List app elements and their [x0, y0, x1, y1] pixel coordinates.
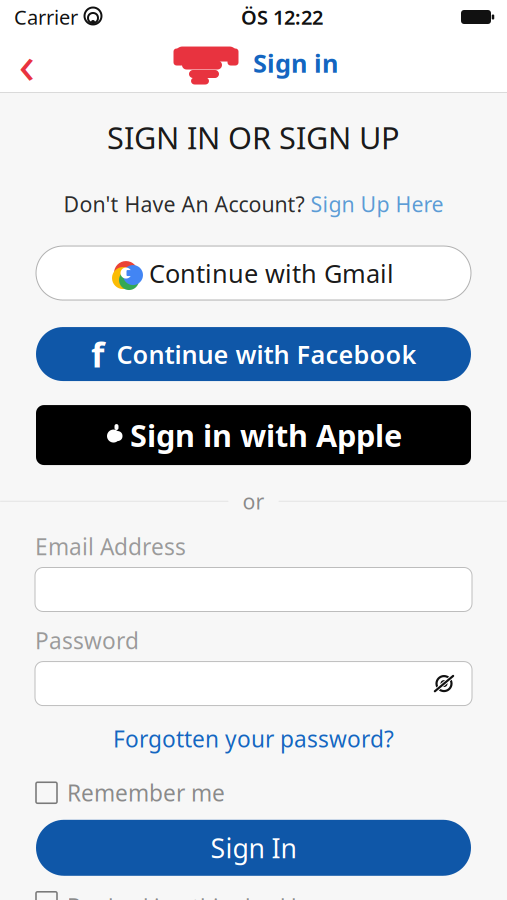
button[interactable]: By checking this checkbox, your are acce… — [36, 892, 423, 900]
staticText: Forgotten your password? — [113, 724, 394, 754]
staticText: or — [242, 487, 264, 515]
staticText: Sign Up Here — [310, 190, 443, 218]
button[interactable]: Back — [0, 36, 54, 90]
staticText: Sign in — [253, 46, 338, 80]
staticText: Sign In — [210, 830, 296, 865]
staticText: Continue with Gmail — [149, 256, 394, 290]
staticText: Sign in with Apple — [130, 415, 402, 455]
staticText: Carrier — [14, 4, 78, 30]
button[interactable]: Sign in with Apple — [36, 405, 471, 465]
staticText: By checking this checkbox, your are acce… — [67, 892, 423, 900]
button[interactable]: Continue with Gmail — [36, 246, 471, 300]
staticText: f — [91, 331, 104, 377]
button[interactable]: f — [36, 327, 471, 381]
staticText: ÖS 12:22 — [241, 4, 323, 30]
staticText: ‹ — [18, 28, 35, 98]
button[interactable]: Sign Up Here — [310, 190, 443, 218]
staticText: Password — [35, 625, 139, 656]
button[interactable]: Sign In — [36, 820, 471, 876]
button[interactable]: Remember me — [36, 778, 225, 808]
staticText: Remember me — [67, 778, 225, 808]
staticText: SIGN IN OR SIGN UP — [107, 117, 400, 158]
staticText: Continue with Facebook — [116, 337, 416, 371]
button[interactable]: Forgotten your password? — [113, 724, 394, 754]
staticText: Email Address — [35, 531, 186, 561]
button[interactable]: Show password — [424, 664, 464, 704]
staticText: Don't Have An Account? — [63, 190, 304, 218]
